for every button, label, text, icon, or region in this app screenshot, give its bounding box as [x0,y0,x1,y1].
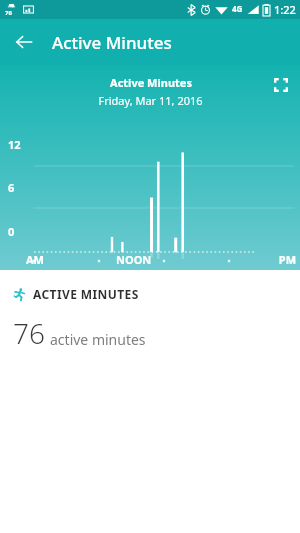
staticText: active minutes [50,330,146,349]
staticText: 0 [8,224,15,239]
staticText: 6 [8,180,15,195]
button[interactable]: Fullscreen [268,72,294,98]
staticText: Active Minutes [110,75,192,90]
button[interactable]: ACTIVE MINUTES [0,270,300,352]
staticText: PM [206,252,296,267]
staticText: Friday, Mar 11, 2016 [98,93,203,108]
staticText: Active Minutes [52,31,172,54]
staticText: AM [26,252,116,267]
staticText: 76 [5,9,12,17]
button[interactable]: Back [8,26,40,58]
staticText: 4G [232,3,243,14]
staticText: NOON [116,252,206,267]
staticText: 1:22 [274,2,296,17]
staticText: ACTIVE MINUTES [33,286,139,302]
staticText: 12 [8,137,21,152]
staticText: 76 [13,314,45,352]
